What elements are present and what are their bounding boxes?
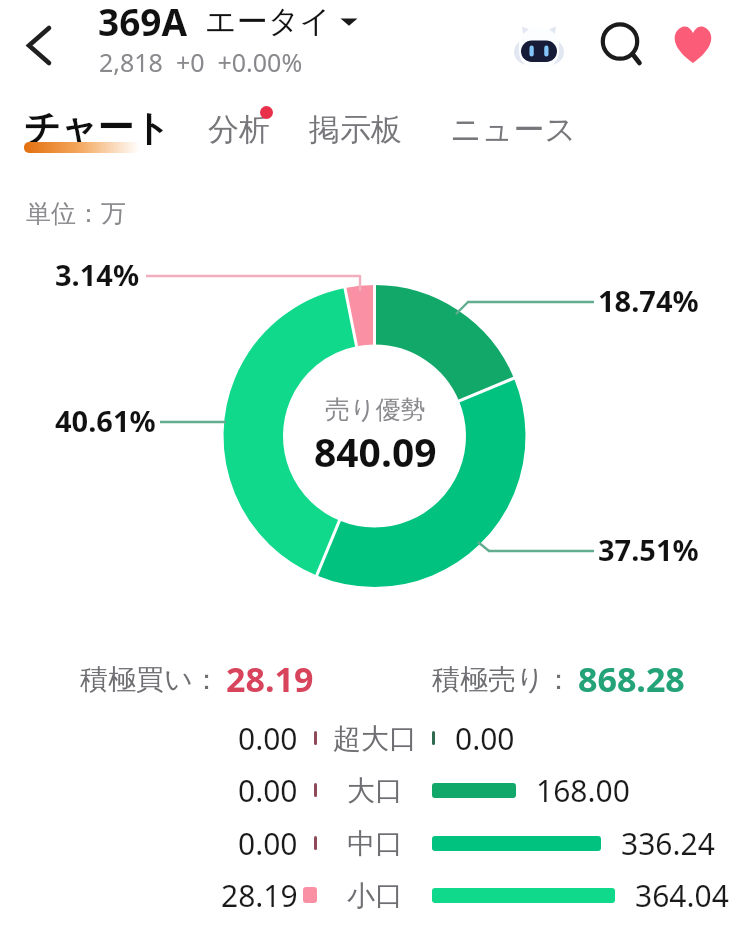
staticText: チャート — [24, 105, 171, 150]
staticText: 単位：万 — [26, 198, 126, 229]
staticText: 40.61% — [55, 401, 156, 440]
button[interactable]: ニュース — [442, 102, 585, 157]
staticText: 0.00 — [238, 770, 298, 811]
staticText: 分析 — [208, 110, 270, 149]
staticText: 28.19 — [221, 875, 298, 916]
staticText: 0.00 — [455, 718, 515, 759]
staticText: 37.51% — [598, 530, 699, 569]
button[interactable]: 分析 — [200, 102, 278, 157]
staticText: 0.00 — [238, 823, 298, 864]
staticText: 中口 — [347, 826, 403, 861]
staticText: 28.19 — [226, 656, 314, 702]
staticText: 小口 — [347, 878, 403, 913]
button[interactable]: Back — [4, 10, 74, 80]
staticText: 大口 — [347, 773, 403, 808]
staticText: 2,818 +0 +0.00% — [99, 45, 303, 79]
staticText: ニュース — [450, 110, 577, 149]
button[interactable]: 積極買い： — [80, 656, 314, 702]
staticText: 3.14% — [55, 255, 140, 294]
button[interactable]: 28.19 — [0, 872, 750, 918]
staticText: 積極売り： — [432, 662, 573, 697]
staticText: 369A — [98, 0, 188, 46]
button[interactable]: 掲示板 — [301, 102, 410, 157]
staticText: 18.74% — [598, 281, 699, 320]
staticText: 0.00 — [238, 718, 298, 759]
button[interactable]: 0.00 — [0, 767, 750, 813]
staticText: 336.24 — [621, 823, 715, 864]
staticText: 364.04 — [635, 875, 729, 916]
staticText: 868.28 — [578, 656, 685, 702]
button[interactable]: 積極売り： — [432, 656, 685, 702]
staticText: 840.09 — [314, 425, 437, 478]
button[interactable]: AI assistant — [514, 21, 576, 83]
staticText: 掲示板 — [309, 110, 402, 149]
button[interactable]: チャート — [24, 89, 171, 162]
button[interactable]: 0.00 — [0, 715, 750, 761]
staticText: 超大口 — [333, 721, 417, 756]
button[interactable]: Favorite — [672, 25, 734, 87]
button[interactable]: 0.00 — [0, 820, 750, 866]
staticText: エータイ — [205, 2, 332, 41]
staticText: 積極買い： — [80, 662, 221, 697]
staticText: 売り優勢 — [325, 394, 426, 425]
button[interactable]: Search — [588, 11, 650, 73]
staticText: 168.00 — [536, 770, 630, 811]
